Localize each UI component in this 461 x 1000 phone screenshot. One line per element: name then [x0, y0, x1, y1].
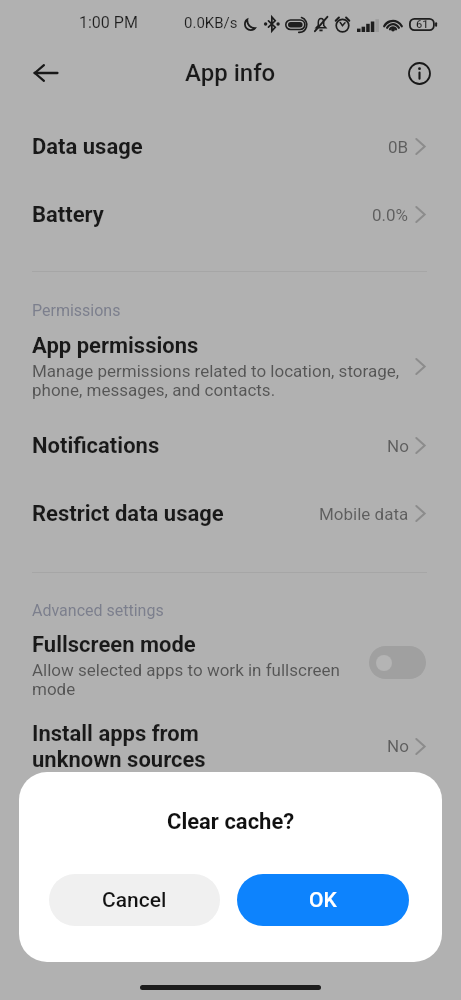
staticText: Clear cache?: [167, 809, 295, 835]
staticText: Permissions: [32, 301, 121, 320]
button[interactable]: Back: [23, 50, 69, 96]
staticText: Restrict data usage: [32, 501, 319, 527]
staticText: Manage permissions related to location, …: [32, 361, 400, 400]
button[interactable]: Install apps from unknown sources: [0, 710, 461, 782]
staticText: Battery: [32, 202, 372, 228]
button[interactable]: Battery: [0, 181, 461, 248]
button[interactable]: App permissions: [0, 326, 461, 406]
button[interactable]: Fullscreen mode: [0, 625, 461, 705]
button[interactable]: Fullscreen mode toggle: [369, 646, 426, 679]
button[interactable]: Restrict data usage: [0, 480, 461, 547]
button[interactable]: Cancel: [49, 874, 220, 926]
staticText: App info: [185, 59, 276, 87]
staticText: Install apps from unknown sources: [32, 721, 387, 772]
staticText: Advanced settings: [32, 601, 164, 620]
button[interactable]: Data usage: [0, 113, 461, 180]
staticText: Cancel: [102, 888, 167, 913]
staticText: Mobile data: [319, 504, 409, 524]
staticText: Fullscreen mode: [32, 632, 196, 658]
staticText: Allow selected apps to work in fullscree…: [32, 660, 340, 699]
staticText: 0.0%: [372, 205, 409, 225]
staticText: App permissions: [32, 333, 199, 359]
staticText: No: [387, 736, 409, 756]
button[interactable]: About app: [398, 52, 440, 94]
staticText: Notifications: [32, 433, 387, 459]
staticText: 0.0KB/s: [184, 14, 238, 32]
staticText: 0B: [388, 137, 409, 157]
staticText: No: [387, 436, 409, 456]
staticText: 61: [416, 18, 429, 31]
staticText: OK: [309, 888, 337, 913]
staticText: Data usage: [32, 134, 388, 160]
staticText: 1:00 PM: [79, 13, 138, 32]
button[interactable]: Notifications: [0, 412, 461, 479]
button[interactable]: OK: [237, 874, 409, 926]
